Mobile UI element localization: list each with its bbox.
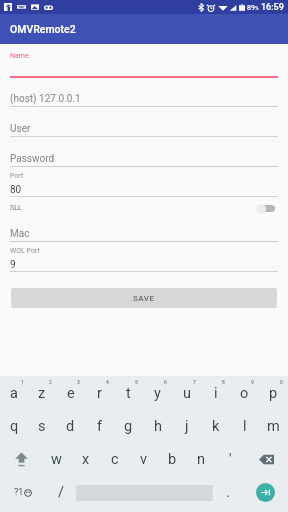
button[interactable]: i [201, 377, 230, 410]
staticText: q [10, 418, 19, 435]
staticText: Password [10, 153, 55, 165]
button[interactable]: j [172, 410, 201, 443]
staticText: o [240, 385, 249, 402]
staticText: y [154, 385, 161, 402]
staticText: . [226, 484, 230, 501]
button[interactable]: x [71, 443, 100, 476]
button[interactable]: r [85, 377, 114, 410]
staticText: ' [229, 451, 232, 468]
staticText: 8 [222, 379, 225, 385]
staticText: 2 [49, 379, 52, 385]
staticText: r [97, 385, 102, 402]
staticText: 9 [10, 259, 16, 271]
button[interactable]: z [28, 377, 56, 410]
button[interactable]: k [201, 410, 230, 443]
button[interactable]: t [114, 377, 143, 410]
staticText: 80 [10, 184, 22, 196]
staticText: 9 [251, 379, 254, 385]
staticText: 4 [106, 379, 109, 385]
button[interactable]: h [143, 410, 172, 443]
staticText: c [111, 451, 119, 468]
staticText: % [255, 5, 259, 11]
staticText: w [51, 451, 62, 468]
staticText: j [185, 418, 189, 435]
button[interactable]: a [0, 377, 28, 410]
button[interactable]: Enter [256, 483, 275, 502]
staticText: f [97, 418, 103, 435]
staticText: k [212, 418, 220, 435]
staticText: u [183, 385, 191, 402]
staticText: t [126, 385, 131, 402]
button[interactable]: d [56, 410, 85, 443]
staticText: g [124, 418, 133, 435]
staticText: WOL Port [10, 247, 40, 255]
staticText: Port [10, 172, 24, 180]
staticText: OMVRemote2 [10, 23, 76, 35]
button[interactable]: / [46, 476, 76, 509]
staticText: b [168, 451, 177, 468]
staticText: User [10, 123, 31, 135]
staticText: (host) 127.0.0.1 [10, 93, 81, 105]
staticText: z [38, 385, 46, 402]
button[interactable]: Symbols [0, 476, 46, 509]
staticText: / [58, 484, 64, 501]
button[interactable]: . [213, 476, 243, 509]
button[interactable]: User [10, 115, 278, 137]
staticText: Name [10, 52, 29, 60]
button[interactable]: f [85, 410, 114, 443]
button[interactable]: Backspace [245, 443, 288, 476]
button[interactable]: u [172, 377, 201, 410]
staticText: a [10, 385, 18, 402]
button[interactable]: c [100, 443, 129, 476]
staticText: l [243, 418, 247, 435]
button[interactable]: WOL Port [10, 250, 278, 272]
staticText: 5 [135, 379, 138, 385]
staticText: h [154, 418, 162, 435]
staticText: 7 [193, 379, 196, 385]
button[interactable]: Password [10, 145, 278, 167]
staticText: x [82, 451, 90, 468]
button[interactable]: (host) 127.0.0.1 [10, 85, 278, 107]
button[interactable]: v [129, 443, 158, 476]
staticText: v [140, 451, 148, 468]
button[interactable]: s [28, 410, 56, 443]
button[interactable]: q [0, 410, 28, 443]
button[interactable]: l [230, 410, 259, 443]
staticText: 0 [280, 379, 283, 385]
staticText: i [214, 385, 218, 402]
button[interactable]: g [114, 410, 143, 443]
staticText: 3 [77, 379, 80, 385]
staticText: p [269, 385, 278, 402]
button[interactable]: p [259, 377, 288, 410]
button[interactable]: Mac [10, 220, 278, 242]
staticText: s [38, 418, 46, 435]
staticText: m [267, 418, 280, 435]
button[interactable]: Shift [0, 443, 42, 476]
button[interactable]: o [230, 377, 259, 410]
button[interactable]: SAVE [11, 288, 277, 308]
button[interactable]: e [56, 377, 85, 410]
button[interactable]: ' [216, 443, 245, 476]
staticText: 1 [21, 379, 24, 385]
staticText: e [67, 385, 75, 402]
staticText: n [197, 451, 206, 468]
staticText: 89 [247, 4, 255, 12]
button[interactable]: w [42, 443, 71, 476]
staticText: 16:59 [261, 2, 284, 13]
button[interactable]: Name [10, 51, 278, 78]
button[interactable]: Port [10, 175, 278, 197]
staticText: SAVE [133, 294, 155, 303]
button[interactable]: SLL [10, 198, 278, 218]
staticText: 6 [164, 379, 167, 385]
button[interactable]: y [143, 377, 172, 410]
staticText: ?1 [14, 487, 24, 498]
staticText: d [66, 418, 75, 435]
staticText: Mac [10, 228, 30, 240]
button[interactable]: n [187, 443, 216, 476]
button[interactable]: b [158, 443, 187, 476]
staticText: SLL [10, 204, 22, 212]
button[interactable]: m [259, 410, 288, 443]
